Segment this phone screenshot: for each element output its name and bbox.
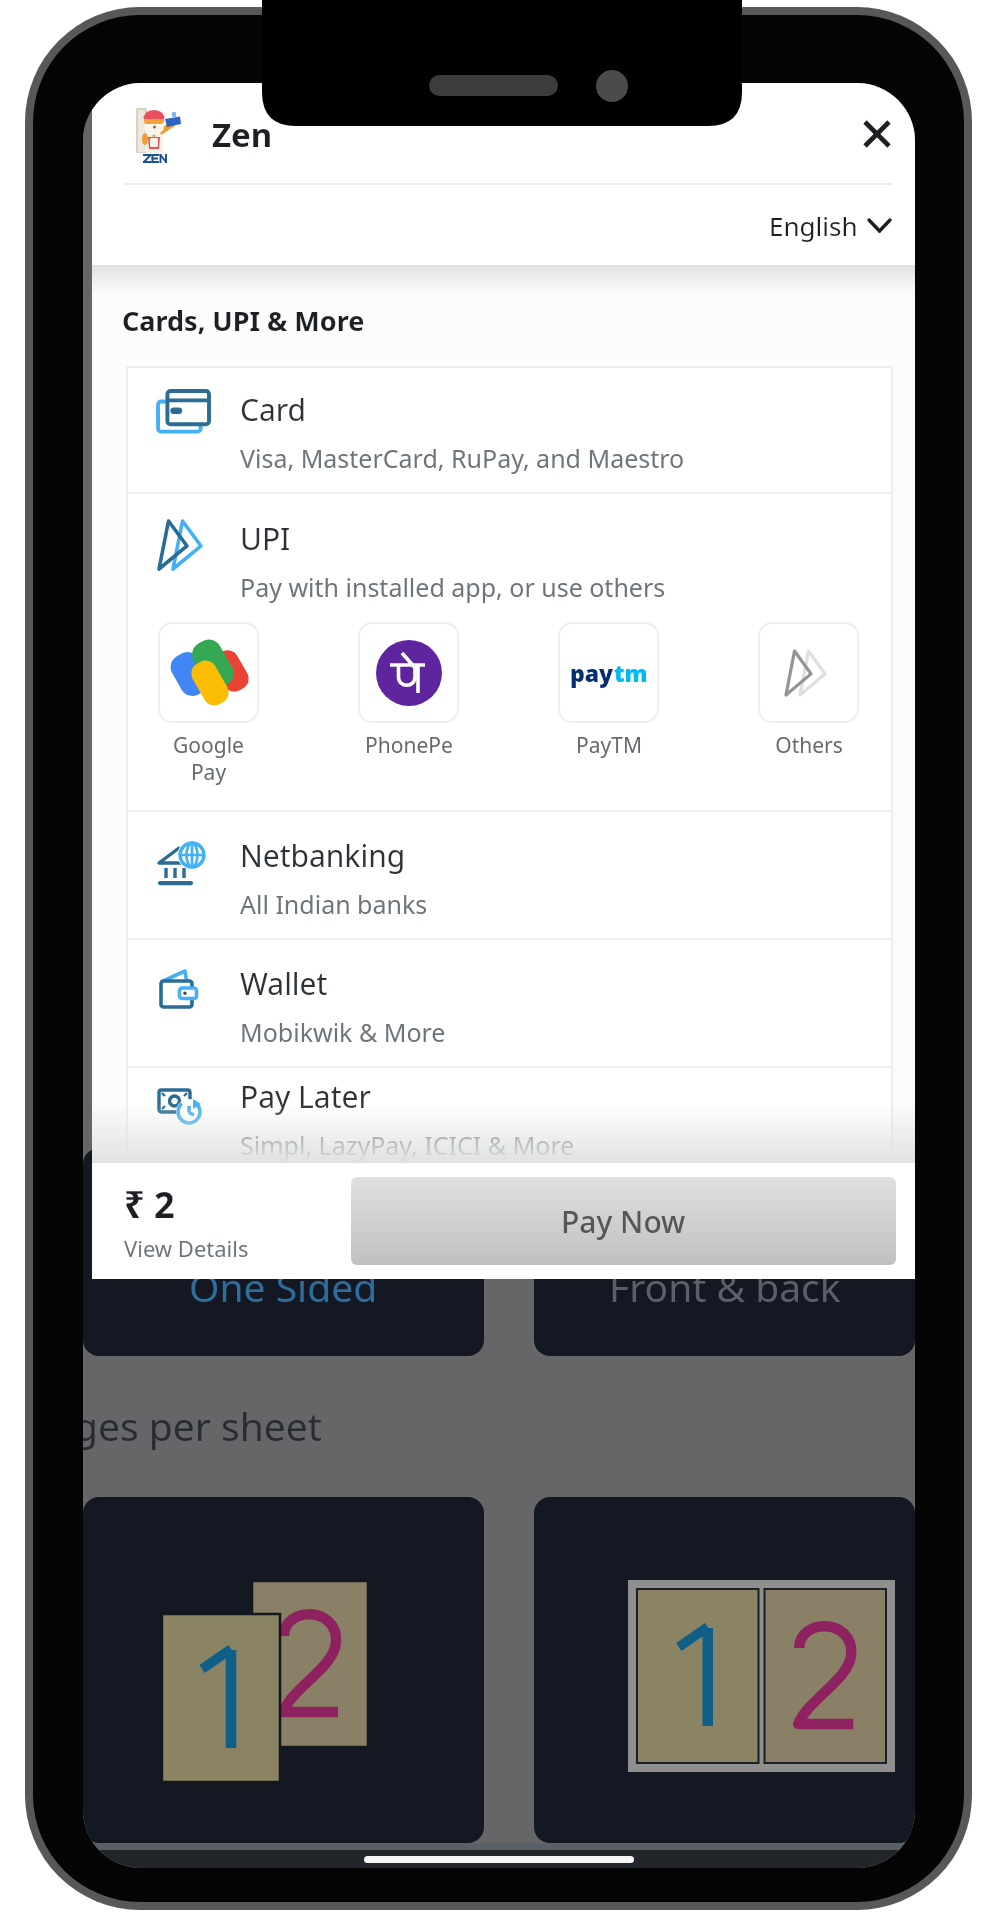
staticText: Visa, MasterCard, RuPay, and Maestro xyxy=(240,441,685,475)
staticText: pay xyxy=(570,657,614,688)
staticText: View Details xyxy=(124,1233,249,1263)
button[interactable]: Pay Later xyxy=(126,1068,893,1163)
staticText: tm xyxy=(614,657,648,688)
staticText: Cards, UPI & More xyxy=(122,302,365,339)
staticText: Pay with installed app, or use others xyxy=(240,570,666,604)
button[interactable]: Card xyxy=(126,366,893,492)
staticText: Simpl, LazyPay, ICICI & More xyxy=(240,1128,575,1162)
staticText: ges per sheet xyxy=(83,1399,322,1452)
button[interactable]: Front & back xyxy=(534,1148,915,1356)
button[interactable] xyxy=(534,1497,915,1843)
staticText: Card xyxy=(240,389,307,430)
staticText: ₹ 2 xyxy=(124,1180,175,1229)
staticText: PayTM xyxy=(576,731,642,760)
staticText: Front & back xyxy=(609,1260,841,1313)
staticText: Pay Now xyxy=(561,1201,686,1242)
button[interactable]: Wallet xyxy=(126,940,893,1066)
staticText: Pay Later xyxy=(240,1076,371,1117)
staticText: PhonePe xyxy=(365,731,453,760)
staticText: Wallet xyxy=(240,963,328,1004)
staticText: All Indian banks xyxy=(240,887,428,921)
staticText: Google Pay xyxy=(173,731,244,786)
staticText: Others xyxy=(775,731,843,760)
button[interactable]: Pay Now xyxy=(351,1177,896,1265)
staticText: Netbanking xyxy=(240,835,406,876)
staticText: Mobikwik & More xyxy=(240,1015,446,1049)
button[interactable]: One Sided xyxy=(83,1148,484,1356)
button[interactable]: Close xyxy=(839,96,915,172)
button[interactable]: ₹ 2 xyxy=(124,1180,249,1263)
button[interactable] xyxy=(83,1497,484,1843)
button[interactable]: English xyxy=(749,208,915,243)
button[interactable]: UPI xyxy=(126,494,893,810)
staticText: UPI xyxy=(240,518,291,559)
button[interactable]: Google Pay xyxy=(158,622,259,786)
button[interactable]: Netbanking xyxy=(126,812,893,938)
staticText: Zen xyxy=(212,112,273,157)
staticText: English xyxy=(769,208,858,243)
button[interactable]: PhonePe xyxy=(358,622,459,760)
button[interactable]: pay xyxy=(558,622,659,760)
staticText: One Sided xyxy=(189,1260,378,1313)
button[interactable]: Others xyxy=(758,622,859,760)
